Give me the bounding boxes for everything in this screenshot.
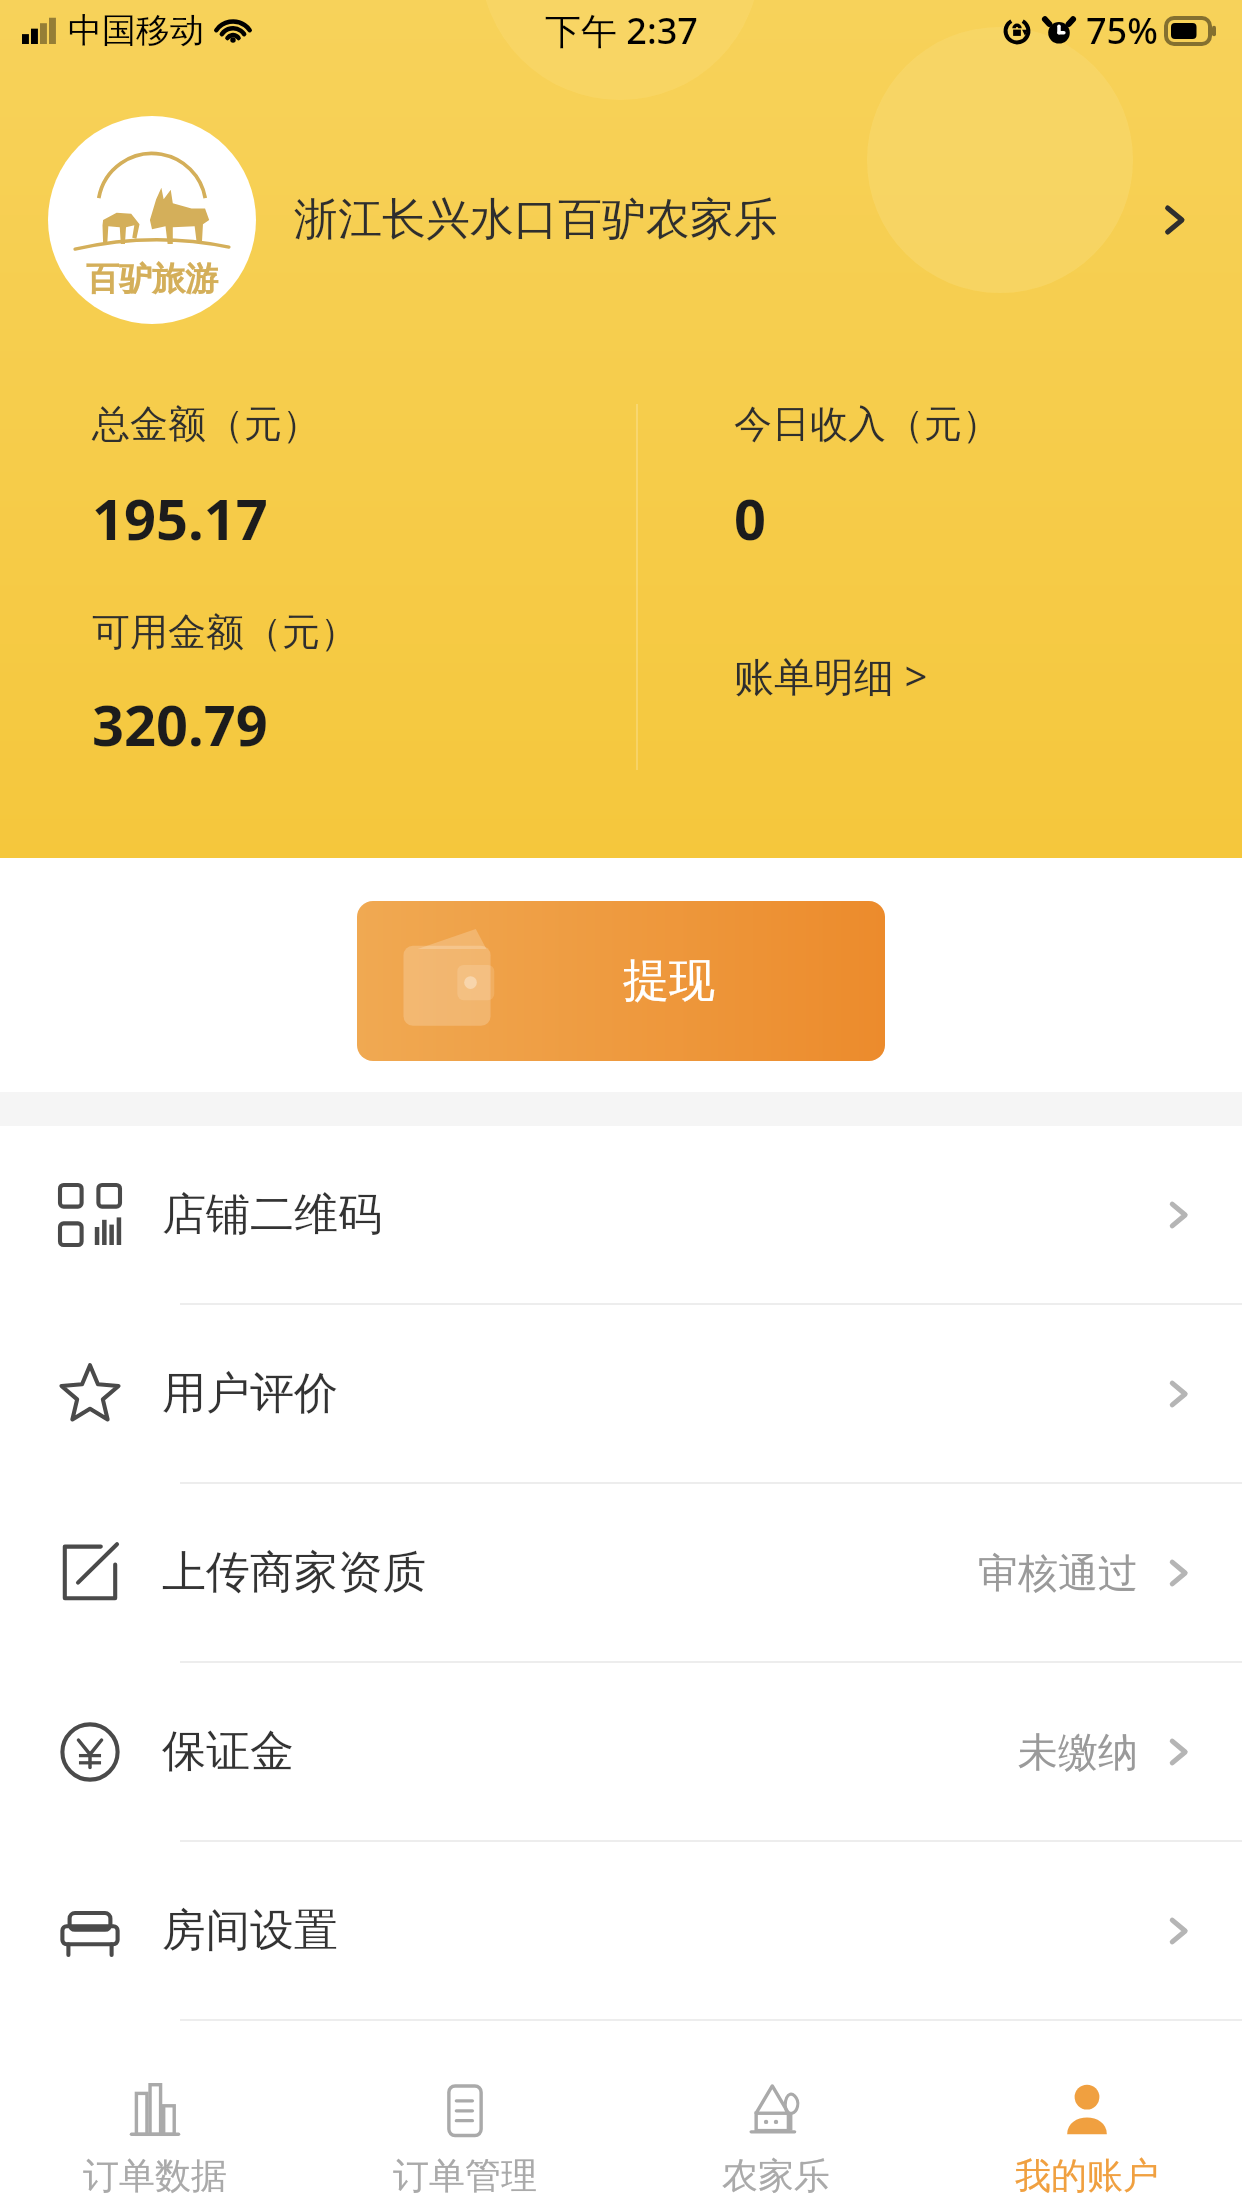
staticText: 我的账户 [1015,2153,1159,2198]
staticText: 账单明细 > [734,648,928,703]
staticText: 下午 2:37 [545,6,698,55]
button[interactable]: 上传商家资质 [0,1484,1242,1661]
staticText: 保证金 [162,1724,294,1779]
button[interactable]: 农家乐 [620,2070,931,2208]
staticText: 75% [1086,6,1158,55]
staticText: 0 [734,480,767,556]
staticText: 浙江长兴水口百驴农家乐 [294,192,778,247]
button[interactable]: 订单管理 [310,2070,620,2208]
button[interactable]: 房间设置 [0,1842,1242,2019]
button[interactable]: 用户评价 [0,1305,1242,1482]
staticText: 可用金额（元） [92,608,358,656]
staticText: 195.17 [92,480,268,556]
button[interactable]: 我的账户 [931,2070,1242,2208]
staticText: 上传商家资质 [162,1545,426,1600]
staticText: 百驴旅游 [86,258,218,300]
staticText: 农家乐 [722,2153,830,2198]
staticText: 用户评价 [162,1366,338,1421]
button[interactable]: 百驴旅游 [0,112,1242,327]
button[interactable]: 店铺二维码 [0,1126,1242,1303]
staticText: 总金额（元） [92,400,320,448]
button[interactable]: 订单数据 [0,2070,310,2208]
staticText: 320.79 [92,686,268,762]
staticText: 房间设置 [162,1903,338,1958]
button[interactable]: 保证金 [0,1663,1242,1840]
staticText: 未缴纳 [1018,1727,1138,1777]
staticText: 审核通过 [978,1548,1138,1598]
staticText: 店铺二维码 [162,1187,382,1242]
staticText: 提现 [623,952,715,1010]
staticText: 订单数据 [83,2153,227,2198]
button[interactable]: 提现 [357,901,885,1061]
staticText: 订单管理 [393,2153,537,2198]
button[interactable]: 账单明细 > [734,648,928,703]
staticText: 今日收入（元） [734,400,1000,448]
staticText: 中国移动 [68,9,204,52]
